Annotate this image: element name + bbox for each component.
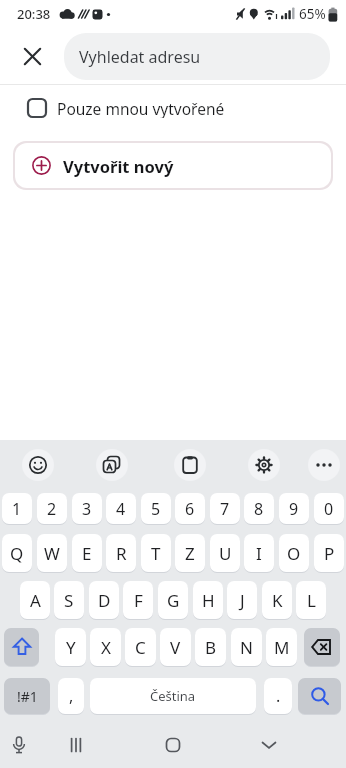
- button[interactable]: [308, 449, 340, 481]
- staticText: S: [64, 589, 74, 612]
- button[interactable]: Q: [2, 534, 32, 572]
- staticText: K: [272, 589, 283, 612]
- button[interactable]: 8: [244, 493, 274, 524]
- staticText: Q: [10, 542, 24, 565]
- button[interactable]: .: [264, 678, 292, 714]
- staticText: ,: [69, 685, 74, 707]
- button[interactable]: Vytvořit nový: [15, 143, 331, 188]
- staticText: 4: [116, 498, 126, 520]
- button[interactable]: [298, 678, 341, 714]
- staticText: Vytvořit nový: [63, 155, 174, 177]
- staticText: C: [135, 636, 146, 659]
- button[interactable]: N: [231, 628, 262, 666]
- staticText: !#1: [17, 687, 38, 706]
- button[interactable]: [174, 449, 206, 481]
- button[interactable]: [0, 28, 64, 84]
- button[interactable]: M: [266, 628, 297, 666]
- button[interactable]: 6: [175, 493, 205, 524]
- staticText: Y: [66, 636, 76, 659]
- staticText: U: [219, 542, 232, 565]
- staticText: J: [240, 589, 245, 612]
- staticText: E: [82, 542, 92, 565]
- button[interactable]: Y: [55, 628, 86, 666]
- staticText: 0: [324, 498, 334, 520]
- staticText: 8: [254, 498, 264, 520]
- button[interactable]: !#1: [4, 678, 50, 714]
- button[interactable]: I: [244, 534, 274, 572]
- staticText: 20:38: [17, 5, 51, 23]
- staticText: 7: [220, 498, 230, 520]
- staticText: T: [151, 542, 161, 565]
- button[interactable]: C: [125, 628, 156, 666]
- button[interactable]: [160, 732, 186, 758]
- button[interactable]: V: [160, 628, 191, 666]
- staticText: .: [276, 685, 281, 707]
- button[interactable]: H: [193, 581, 223, 619]
- staticText: Čeština: [150, 687, 196, 705]
- button[interactable]: ,: [58, 678, 84, 714]
- button[interactable]: [248, 449, 280, 481]
- button[interactable]: S: [54, 581, 84, 619]
- staticText: H: [202, 589, 215, 612]
- staticText: Pouze mnou vytvořené: [57, 98, 225, 118]
- button[interactable]: L: [296, 581, 326, 619]
- staticText: 5: [151, 498, 161, 520]
- button[interactable]: Z: [175, 534, 205, 572]
- staticText: N: [240, 636, 253, 659]
- staticText: V: [170, 636, 181, 659]
- button[interactable]: W: [37, 534, 67, 572]
- button[interactable]: [63, 732, 89, 758]
- button[interactable]: [256, 732, 282, 758]
- button[interactable]: R: [106, 534, 136, 572]
- staticText: 1: [12, 498, 22, 520]
- button[interactable]: J: [227, 581, 257, 619]
- button[interactable]: O: [279, 534, 309, 572]
- button[interactable]: 1: [2, 493, 32, 524]
- staticText: 65%: [299, 5, 326, 23]
- staticText: I: [256, 542, 262, 565]
- staticText: F: [134, 589, 143, 612]
- button[interactable]: Pouze mnou vytvořené: [0, 98, 346, 118]
- button[interactable]: [4, 628, 39, 666]
- button[interactable]: [22, 449, 54, 481]
- button[interactable]: D: [89, 581, 119, 619]
- button[interactable]: [96, 449, 128, 481]
- button[interactable]: B: [195, 628, 226, 666]
- button[interactable]: 9: [279, 493, 309, 524]
- button[interactable]: [6, 732, 32, 758]
- button[interactable]: 7: [210, 493, 240, 524]
- button[interactable]: 4: [106, 493, 136, 524]
- button[interactable]: T: [141, 534, 171, 572]
- button[interactable]: Vyhledat adresu: [64, 33, 330, 80]
- button[interactable]: 2: [37, 493, 67, 524]
- staticText: 3: [82, 498, 92, 520]
- staticText: D: [98, 589, 111, 612]
- staticText: L: [307, 589, 316, 612]
- button[interactable]: Čeština: [90, 678, 256, 714]
- button[interactable]: F: [123, 581, 153, 619]
- staticText: O: [287, 542, 301, 565]
- staticText: 9: [289, 498, 299, 520]
- staticText: 2: [47, 498, 57, 520]
- staticText: X: [101, 636, 111, 659]
- button[interactable]: 3: [72, 493, 102, 524]
- staticText: A: [30, 589, 41, 612]
- button[interactable]: [304, 628, 340, 666]
- button[interactable]: 5: [141, 493, 171, 524]
- button[interactable]: U: [210, 534, 240, 572]
- button[interactable]: 0: [314, 493, 344, 524]
- button[interactable]: X: [90, 628, 121, 666]
- button[interactable]: K: [262, 581, 292, 619]
- staticText: W: [44, 542, 60, 565]
- staticText: 6: [185, 498, 195, 520]
- staticText: Vyhledat adresu: [79, 46, 201, 68]
- staticText: G: [167, 589, 180, 612]
- staticText: P: [324, 542, 335, 565]
- staticText: Z: [185, 542, 195, 565]
- button[interactable]: A: [20, 581, 50, 619]
- button[interactable]: P: [314, 534, 344, 572]
- button[interactable]: G: [158, 581, 188, 619]
- staticText: M: [274, 636, 290, 659]
- staticText: B: [205, 636, 217, 659]
- button[interactable]: E: [72, 534, 102, 572]
